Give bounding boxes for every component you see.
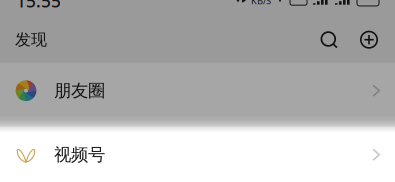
staticText: 朋友圈 xyxy=(54,80,105,101)
button[interactable]: Search xyxy=(309,21,349,59)
button[interactable]: 朋友圈 xyxy=(0,63,395,119)
button[interactable]: Add xyxy=(349,21,389,59)
staticText: KB/S xyxy=(251,0,271,7)
staticText: 视频号 xyxy=(54,144,105,165)
button[interactable]: 视频号 xyxy=(0,127,395,182)
staticText: 发现 xyxy=(15,30,47,50)
staticText: 15:55 xyxy=(16,0,61,12)
